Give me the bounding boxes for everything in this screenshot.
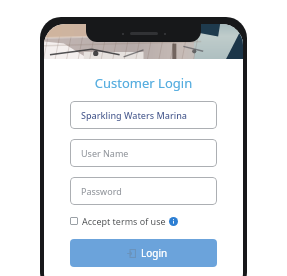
button[interactable]: Info xyxy=(169,217,178,226)
staticText: Customer Login xyxy=(44,74,243,92)
staticText: User Name xyxy=(81,147,129,159)
staticText: Password xyxy=(81,185,122,197)
button[interactable]: Login xyxy=(70,239,217,267)
staticText: Sparkling Waters Marina xyxy=(81,109,187,121)
button[interactable]: Sparkling Waters Marina xyxy=(70,101,217,129)
staticText: Accept terms of use xyxy=(82,215,166,227)
button[interactable]: Accept terms checkbox xyxy=(70,217,78,225)
button[interactable]: Password xyxy=(70,177,217,205)
button[interactable]: User Name xyxy=(70,139,217,167)
staticText: Login xyxy=(141,246,168,260)
